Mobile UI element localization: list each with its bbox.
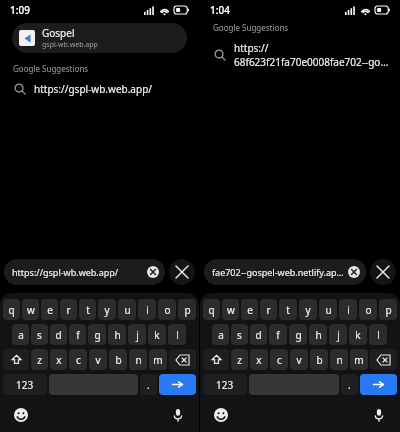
button[interactable]: y — [299, 299, 317, 320]
button[interactable]: . — [341, 374, 358, 395]
button[interactable]: Voice input — [370, 406, 388, 424]
staticText: w — [27, 303, 35, 317]
button[interactable]: e — [241, 299, 258, 320]
button[interactable]: x — [50, 349, 67, 370]
staticText: o — [164, 303, 171, 317]
button[interactable]: q — [3, 299, 20, 320]
staticText: e — [247, 303, 253, 317]
button[interactable]: d — [250, 324, 267, 345]
button[interactable]: v — [89, 349, 107, 370]
button[interactable]: https://gspl-wb.web.app/ — [0, 82, 199, 96]
button[interactable]: z — [231, 349, 248, 370]
button[interactable]: Emoji — [212, 406, 230, 424]
staticText: u — [124, 303, 131, 317]
button[interactable]: Backspace — [169, 349, 196, 370]
staticText: h — [114, 328, 121, 342]
button[interactable]: https:// — [200, 41, 400, 69]
button[interactable]: f — [69, 324, 86, 345]
button[interactable]: . — [140, 374, 157, 395]
button[interactable]: j — [329, 324, 347, 345]
staticText: v — [296, 353, 302, 367]
staticText: x — [56, 353, 62, 367]
button[interactable]: t — [79, 299, 96, 320]
button[interactable]: Clear text — [347, 265, 361, 279]
button[interactable]: o — [158, 299, 176, 320]
button[interactable]: p — [178, 299, 196, 320]
staticText: i — [347, 303, 350, 317]
staticText: 1:04 — [210, 3, 230, 17]
button[interactable]: z — [31, 349, 48, 370]
staticText: i — [146, 303, 149, 317]
staticText: p — [385, 303, 392, 317]
button[interactable]: Gospel — [12, 23, 187, 53]
button[interactable]: Close — [370, 259, 396, 285]
button[interactable]: Emoji — [12, 406, 30, 424]
button[interactable]: k — [148, 324, 166, 345]
button[interactable]: Go — [360, 374, 397, 395]
staticText: k — [154, 328, 160, 342]
button[interactable]: i — [138, 299, 156, 320]
staticText: 68f623f21fa70e0008fae702--gos… — [234, 55, 392, 69]
staticText: Google Suggestions — [13, 63, 89, 74]
button[interactable]: m — [350, 349, 368, 370]
button[interactable]: t — [279, 299, 297, 320]
button[interactable]: 123 — [203, 374, 247, 395]
staticText: r — [266, 303, 271, 317]
button[interactable]: d — [50, 324, 67, 345]
button[interactable]: p — [379, 299, 397, 320]
button[interactable]: c — [270, 349, 288, 370]
button[interactable]: 123 — [3, 374, 47, 395]
button[interactable]: l — [168, 324, 186, 345]
button[interactable]: w — [222, 299, 239, 320]
button[interactable]: u — [319, 299, 337, 320]
button[interactable]: Backspace — [370, 349, 397, 370]
staticText: r — [66, 303, 71, 317]
button[interactable]: w — [22, 299, 39, 320]
staticText: 123 — [16, 378, 34, 392]
button[interactable]: q — [203, 299, 220, 320]
button[interactable]: m — [149, 349, 167, 370]
staticText: n — [135, 353, 142, 367]
button[interactable]: n — [330, 349, 348, 370]
button[interactable]: c — [69, 349, 87, 370]
button[interactable]: j — [128, 324, 146, 345]
button[interactable]: s — [31, 324, 48, 345]
button[interactable]: b — [310, 349, 328, 370]
button[interactable]: Shift — [3, 349, 29, 370]
staticText: b — [316, 353, 323, 367]
button[interactable]: k — [349, 324, 367, 345]
button[interactable]: Go — [159, 374, 196, 395]
button[interactable]: Close — [169, 259, 195, 285]
button[interactable]: https://gspl-wb.web.app/ — [4, 259, 165, 285]
button[interactable]: n — [129, 349, 147, 370]
button[interactable]: y — [98, 299, 116, 320]
button[interactable]: h — [309, 324, 327, 345]
button[interactable]: a — [12, 324, 29, 345]
button[interactable]: s — [231, 324, 248, 345]
button[interactable]: g — [88, 324, 106, 345]
button[interactable]: x — [250, 349, 268, 370]
staticText: s — [237, 328, 242, 342]
button[interactable]: fae702--gospel-web.netlify.app/ — [204, 259, 366, 285]
button[interactable]: u — [118, 299, 136, 320]
button[interactable]: i — [339, 299, 357, 320]
button[interactable]: h — [108, 324, 126, 345]
button[interactable]: v — [290, 349, 308, 370]
button[interactable]: Clear text — [146, 265, 160, 279]
button[interactable]: Voice input — [169, 406, 187, 424]
button[interactable]: b — [109, 349, 127, 370]
staticText: m — [354, 353, 364, 367]
button[interactable]: l — [369, 324, 387, 345]
button[interactable]: o — [359, 299, 377, 320]
button[interactable]: Shift — [203, 349, 229, 370]
staticText: Gospel — [42, 26, 75, 40]
button[interactable]: r — [260, 299, 277, 320]
staticText: o — [365, 303, 372, 317]
button[interactable]: e — [41, 299, 58, 320]
button[interactable]: f — [269, 324, 287, 345]
button[interactable]: r — [60, 299, 77, 320]
button[interactable]: a — [212, 324, 229, 345]
button[interactable]: g — [289, 324, 307, 345]
